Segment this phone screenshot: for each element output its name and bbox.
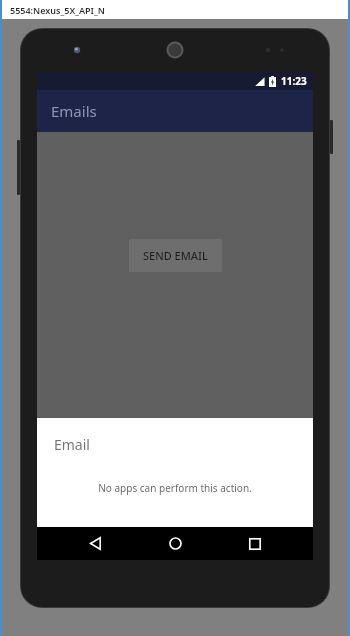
staticText: 5554:Nexus_5X_API_N bbox=[10, 4, 105, 16]
staticText: Emails bbox=[51, 101, 97, 121]
button[interactable]: Back bbox=[73, 527, 117, 560]
staticText: Email bbox=[54, 435, 90, 454]
staticText: 11:23 bbox=[281, 74, 307, 88]
staticText: No apps can perform this action. bbox=[37, 481, 313, 495]
staticText: SEND EMAIL bbox=[143, 248, 208, 263]
button[interactable]: Home bbox=[153, 527, 197, 560]
button[interactable]: SEND EMAIL bbox=[129, 239, 222, 272]
button[interactable]: Recent apps bbox=[233, 527, 277, 560]
